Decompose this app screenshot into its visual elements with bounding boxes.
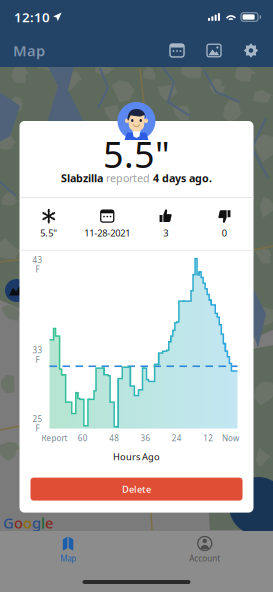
button[interactable]: Delete xyxy=(30,478,242,501)
staticText: g xyxy=(32,513,41,532)
staticText: 0 xyxy=(222,227,227,239)
staticText: 3 xyxy=(163,227,168,239)
staticText: 11-28-2021 xyxy=(84,227,130,239)
staticText: 25 xyxy=(32,413,42,424)
staticText: 43 xyxy=(32,254,42,265)
staticText: Map xyxy=(13,41,45,60)
staticText: Report xyxy=(41,433,67,443)
staticText: G xyxy=(3,513,14,532)
staticText: 5.5" xyxy=(103,130,170,178)
button[interactable]: Settings xyxy=(240,40,262,60)
staticText: Hours Ago xyxy=(113,450,160,463)
staticText: 48 xyxy=(109,433,119,443)
staticText: 36 xyxy=(140,433,150,443)
staticText: Map xyxy=(60,553,76,564)
button[interactable]: Photos xyxy=(203,40,225,60)
staticText: 12:10 xyxy=(14,8,50,26)
button[interactable]: Map xyxy=(0,531,136,564)
staticText: Delete xyxy=(122,483,151,495)
staticText: l xyxy=(41,513,45,532)
staticText: 5.5" xyxy=(40,227,57,239)
staticText: 33 xyxy=(32,345,42,355)
staticText: e xyxy=(45,513,53,532)
staticText: 4 days ago. xyxy=(153,171,212,185)
staticText: o xyxy=(23,513,32,532)
button[interactable]: Calendar xyxy=(166,40,188,60)
staticText: F xyxy=(35,264,39,275)
staticText: 12 xyxy=(203,433,213,443)
staticText: o xyxy=(14,513,23,532)
staticText: F xyxy=(35,354,39,365)
button[interactable]: Account xyxy=(136,531,273,564)
staticText: Slabzilla xyxy=(61,171,103,185)
staticText: F xyxy=(35,423,39,434)
staticText: 24 xyxy=(172,433,182,443)
staticText: Account xyxy=(189,553,220,564)
staticText: 60 xyxy=(78,433,88,443)
staticText: reported xyxy=(103,171,153,185)
staticText: Now xyxy=(222,433,239,443)
